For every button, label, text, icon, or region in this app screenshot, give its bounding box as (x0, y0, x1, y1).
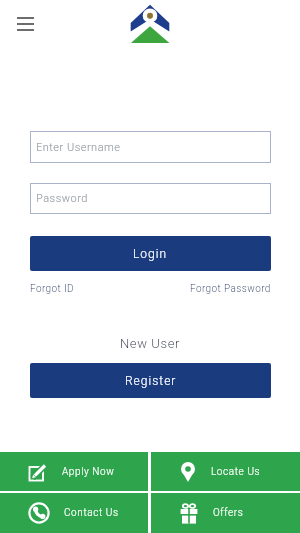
button[interactable]: Locate Us (151, 452, 300, 491)
staticText: New User (120, 336, 180, 351)
button[interactable]: Register (30, 363, 271, 398)
staticText: Login (133, 247, 168, 261)
staticText: Enter Username (36, 141, 121, 154)
staticText: Password (36, 192, 88, 205)
button[interactable]: Offers (151, 493, 300, 533)
staticText: Offers (213, 507, 244, 519)
button[interactable]: Forgot Password (190, 283, 271, 295)
staticText: Apply Now (62, 466, 115, 478)
button[interactable]: Password (30, 183, 271, 214)
button[interactable] (12, 13, 38, 35)
button[interactable]: Login (30, 236, 271, 271)
button[interactable]: Contact Us (0, 493, 148, 533)
staticText: Contact Us (64, 507, 119, 519)
button[interactable]: Enter Username (30, 131, 271, 163)
staticText: Register (125, 374, 177, 388)
button[interactable]: Forgot ID (30, 283, 75, 295)
button[interactable]: Apply Now (0, 452, 148, 491)
staticText: Locate Us (211, 466, 261, 478)
